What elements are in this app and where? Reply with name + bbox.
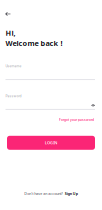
- staticText: Forgot your password: [59, 118, 94, 122]
- button[interactable]: Show password: [88, 100, 95, 107]
- staticText: Welcome back !: [5, 38, 62, 48]
- staticText: Username: [5, 64, 21, 68]
- button[interactable]: Sign Up: [65, 191, 78, 196]
- button[interactable]: LOGIN: [7, 136, 95, 150]
- staticText: Sign Up: [65, 191, 78, 196]
- staticText: Password: [5, 94, 21, 98]
- staticText: LOGIN: [45, 140, 57, 145]
- staticText: Don't have an account?: [24, 191, 63, 196]
- button[interactable]: Back: [2, 8, 14, 20]
- button[interactable]: Forgot your password: [59, 118, 94, 122]
- staticText: Hi,: [5, 28, 15, 38]
